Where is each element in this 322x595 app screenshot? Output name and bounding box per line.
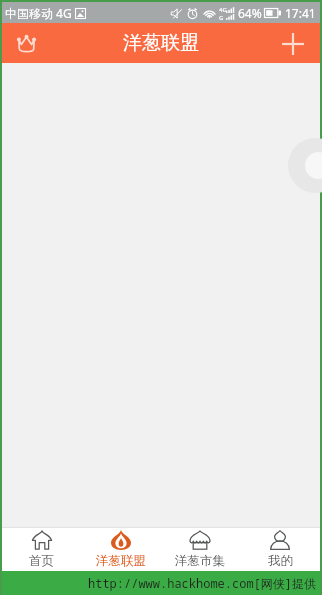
staticText: 4G: [219, 6, 227, 14]
staticText: 洋葱联盟: [96, 553, 146, 569]
button[interactable]: 洋葱联盟: [81, 528, 160, 571]
staticText: 首页: [29, 553, 54, 569]
button[interactable]: 我的: [240, 528, 320, 571]
button[interactable]: 首页: [2, 528, 81, 571]
button[interactable]: Quick action: [288, 138, 322, 193]
staticText: 17:41: [285, 5, 316, 21]
staticText: G: [219, 14, 224, 21]
staticText: 我的: [268, 553, 293, 569]
button[interactable]: Alliance: [2, 23, 46, 63]
staticText: 64%: [238, 5, 262, 21]
staticText: 洋葱联盟: [123, 31, 199, 55]
staticText: 中国移动 4G: [5, 5, 72, 21]
button[interactable]: Add: [276, 23, 320, 63]
staticText: http://www.hackhome.com[网侠]提供: [88, 575, 317, 591]
staticText: 洋葱市集: [175, 553, 225, 569]
button[interactable]: 洋葱市集: [160, 528, 240, 571]
